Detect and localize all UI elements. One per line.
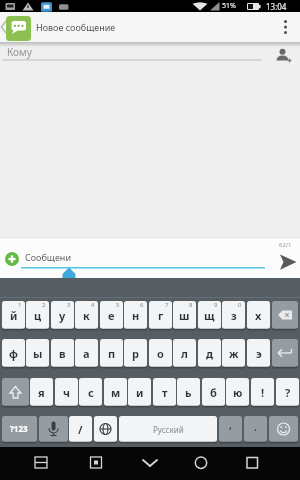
staticText: Сообщени xyxy=(25,251,71,263)
button[interactable] xyxy=(219,416,242,443)
staticText: г xyxy=(158,308,164,323)
staticText: ч xyxy=(63,385,71,400)
staticText: , xyxy=(229,418,232,432)
staticText: 6 xyxy=(140,301,144,309)
staticText: п xyxy=(108,346,116,361)
staticText: Новое сообщение xyxy=(36,21,116,33)
staticText: / xyxy=(78,422,83,437)
staticText: р xyxy=(132,346,139,361)
button[interactable]: ж xyxy=(222,339,245,368)
staticText: 4 xyxy=(91,301,95,309)
staticText: щ xyxy=(204,308,215,323)
staticText: 2 xyxy=(42,301,46,309)
button[interactable] xyxy=(244,416,267,443)
button[interactable]: ш xyxy=(173,301,196,330)
staticText: к xyxy=(83,308,90,323)
staticText: Русский xyxy=(153,424,184,435)
button[interactable]: ь xyxy=(177,378,200,407)
button[interactable] xyxy=(270,247,300,275)
staticText: 8 xyxy=(189,301,193,309)
staticText: 1 xyxy=(18,301,22,309)
staticText: т xyxy=(162,385,168,400)
staticText: н xyxy=(132,308,140,323)
button[interactable] xyxy=(39,416,68,443)
staticText: с xyxy=(88,385,94,400)
button[interactable]: й xyxy=(2,301,25,330)
button[interactable]: ! xyxy=(251,378,274,407)
button[interactable]: щ xyxy=(198,301,221,330)
button[interactable] xyxy=(2,378,29,407)
button[interactable]: Кому xyxy=(0,42,300,68)
button[interactable]: / xyxy=(69,416,92,443)
button[interactable]: ч xyxy=(55,378,78,407)
staticText: ш xyxy=(179,308,190,323)
staticText: я xyxy=(38,385,45,400)
staticText: 13:04 xyxy=(266,1,287,12)
button[interactable]: в xyxy=(51,339,74,368)
staticText: . xyxy=(254,420,257,434)
staticText: у xyxy=(59,308,66,323)
button[interactable] xyxy=(94,416,117,443)
button[interactable] xyxy=(181,447,221,480)
button[interactable]: ю xyxy=(226,378,249,407)
button[interactable]: о xyxy=(149,339,172,368)
staticText: й xyxy=(10,308,18,323)
staticText: ф xyxy=(9,346,18,361)
button[interactable] xyxy=(274,12,300,42)
button[interactable] xyxy=(130,447,170,480)
button[interactable]: б xyxy=(202,378,225,407)
button[interactable]: п xyxy=(100,339,123,368)
button[interactable]: е xyxy=(100,301,123,330)
button[interactable] xyxy=(272,339,298,368)
button[interactable]: ф xyxy=(2,339,25,368)
staticText: е xyxy=(108,308,115,323)
staticText: б xyxy=(210,385,217,400)
staticText: э xyxy=(256,346,262,361)
staticText: л xyxy=(181,346,188,361)
button[interactable]: ? xyxy=(276,378,299,407)
button[interactable] xyxy=(269,416,298,443)
button[interactable]: х xyxy=(247,301,270,330)
button[interactable]: м xyxy=(104,378,127,407)
button[interactable]: к xyxy=(75,301,98,330)
button[interactable] xyxy=(76,447,116,480)
staticText: х xyxy=(255,308,262,323)
button[interactable] xyxy=(268,42,300,68)
staticText: 7 xyxy=(165,301,169,309)
staticText: ы xyxy=(33,346,43,361)
button[interactable]: у xyxy=(51,301,74,330)
staticText: ж xyxy=(229,346,239,361)
button[interactable]: Русский xyxy=(119,416,217,443)
button[interactable]: и xyxy=(128,378,151,407)
staticText: ?123 xyxy=(10,423,28,434)
button[interactable]: г xyxy=(149,301,172,330)
button[interactable]: л xyxy=(173,339,196,368)
staticText: а xyxy=(83,346,90,361)
staticText: ю xyxy=(233,385,243,400)
staticText: 51% xyxy=(222,1,236,11)
button[interactable] xyxy=(2,416,37,443)
staticText: ! xyxy=(261,385,265,400)
button[interactable] xyxy=(21,447,61,480)
button[interactable]: я xyxy=(30,378,53,407)
staticText: о xyxy=(157,346,164,361)
button[interactable] xyxy=(272,301,298,330)
button[interactable]: а xyxy=(75,339,98,368)
staticText: 0 xyxy=(238,301,242,309)
staticText: 3 xyxy=(67,301,71,309)
button[interactable]: э xyxy=(247,339,270,368)
staticText: д xyxy=(206,346,214,361)
staticText: и xyxy=(136,385,144,400)
button[interactable]: н xyxy=(124,301,147,330)
button[interactable]: с xyxy=(79,378,102,407)
button[interactable]: р xyxy=(124,339,147,368)
staticText: ? xyxy=(285,385,291,400)
button[interactable] xyxy=(232,447,272,480)
button[interactable]: д xyxy=(198,339,221,368)
staticText: ц xyxy=(34,308,42,323)
button[interactable]: ц xyxy=(26,301,49,330)
button[interactable]: Новое сообщение xyxy=(36,12,196,42)
button[interactable]: з xyxy=(222,301,245,330)
button[interactable]: т xyxy=(153,378,176,407)
button[interactable]: ы xyxy=(26,339,49,368)
